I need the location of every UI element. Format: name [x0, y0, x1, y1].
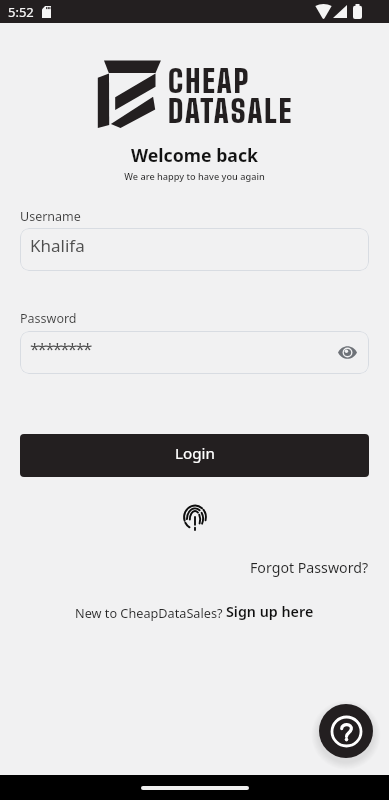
staticText: We are happy to have you again [0, 170, 389, 183]
button[interactable]: Help [319, 704, 373, 758]
button[interactable]: Sign in with fingerprint [177, 500, 212, 535]
button[interactable]: Forgot Password? [250, 558, 369, 577]
staticText: Username [20, 208, 81, 225]
button[interactable]: Sign up here [226, 602, 314, 621]
staticText: Login [175, 443, 215, 464]
staticText: Khalifa [30, 234, 85, 257]
staticText: 5:52 [8, 3, 34, 21]
staticText: CHEAP [168, 62, 251, 99]
button[interactable]: Login [20, 434, 369, 477]
button[interactable]: ******** [20, 331, 369, 374]
staticText: Welcome back [0, 143, 389, 167]
staticText: Password [20, 310, 77, 327]
staticText: New to CheapDataSales? [75, 604, 226, 621]
button[interactable]: Khalifa [20, 228, 369, 271]
button[interactable]: Show password [338, 345, 357, 360]
staticText: ******** [30, 337, 338, 360]
staticText: DATASALE [168, 92, 294, 129]
